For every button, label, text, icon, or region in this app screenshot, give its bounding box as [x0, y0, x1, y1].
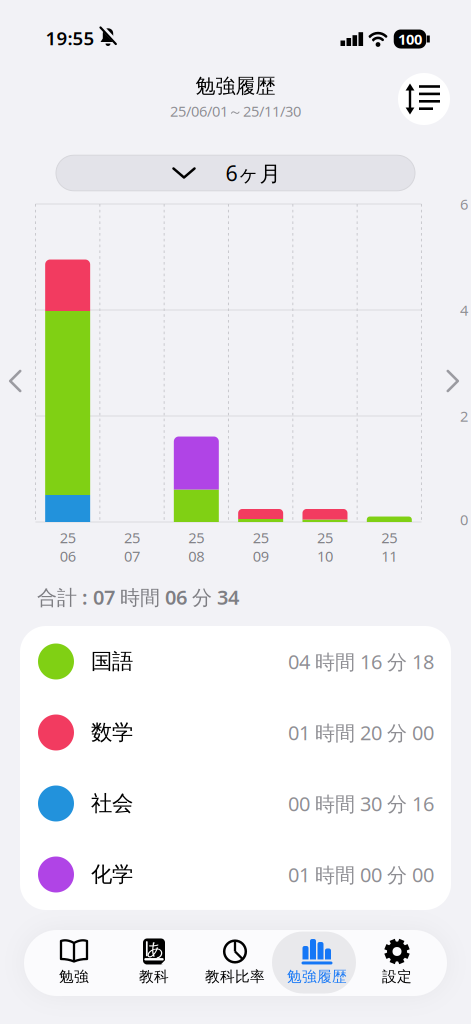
- staticText: 教科比率: [205, 967, 265, 985]
- button[interactable]: あ: [114, 934, 194, 990]
- staticText: 社会: [91, 790, 133, 817]
- button[interactable]: 設定: [357, 934, 437, 990]
- staticText: 0: [460, 510, 468, 529]
- staticText: 勉強履歴: [287, 967, 347, 985]
- staticText: 4: [460, 300, 468, 320]
- staticText: 2: [460, 406, 468, 426]
- staticText: 06: [60, 546, 76, 566]
- staticText: 6ヶ月: [225, 159, 280, 187]
- button[interactable]: 教科比率: [195, 934, 275, 990]
- staticText: 勉強履歴: [195, 74, 275, 98]
- staticText: 01 時間 00 分 00: [288, 861, 434, 888]
- button[interactable]: [442, 368, 464, 394]
- staticText: 合計 : 07 時間 06 分 34: [37, 584, 239, 610]
- staticText: 100: [398, 29, 422, 49]
- button[interactable]: 6ヶ月: [56, 155, 415, 191]
- button[interactable]: [4, 368, 26, 394]
- staticText: 勉強: [59, 967, 89, 985]
- button[interactable]: [397, 72, 451, 126]
- staticText: 25: [60, 528, 76, 547]
- staticText: 25/06/01～25/11/30: [170, 101, 301, 121]
- staticText: 07: [124, 546, 140, 566]
- staticText: 04 時間 16 分 18: [288, 648, 434, 675]
- staticText: 6: [460, 194, 468, 214]
- staticText: 25: [124, 528, 140, 547]
- staticText: 10: [317, 546, 333, 566]
- staticText: 設定: [382, 967, 412, 985]
- button[interactable]: 勉強: [34, 934, 114, 990]
- staticText: 01 時間 20 分 00: [288, 719, 434, 746]
- staticText: 25: [253, 528, 269, 547]
- staticText: 国語: [91, 648, 133, 675]
- staticText: 化学: [91, 861, 133, 888]
- staticText: 25: [188, 528, 204, 547]
- staticText: 数学: [91, 719, 133, 746]
- staticText: 25: [381, 528, 397, 547]
- staticText: 09: [253, 546, 269, 566]
- staticText: 08: [188, 546, 204, 566]
- staticText: あ: [146, 939, 164, 960]
- staticText: 11: [381, 546, 397, 566]
- staticText: 教科: [139, 967, 169, 985]
- staticText: 00 時間 30 分 16: [288, 790, 434, 817]
- staticText: 25: [317, 528, 333, 547]
- button[interactable]: 勉強履歴: [277, 934, 357, 990]
- staticText: 19:55: [45, 26, 94, 50]
